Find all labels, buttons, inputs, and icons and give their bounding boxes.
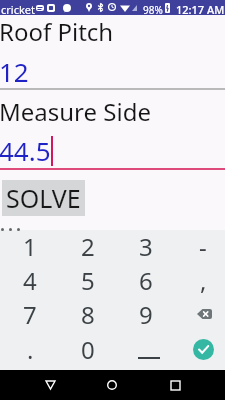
button[interactable]: 8 — [60, 297, 116, 331]
staticText: 9 — [139, 298, 153, 331]
button[interactable]: Home — [92, 370, 132, 400]
staticText: 1 — [23, 230, 37, 263]
staticText: 98% — [143, 3, 163, 17]
staticText: cricket — [1, 2, 35, 17]
button[interactable]: 7 — [2, 297, 58, 331]
staticText: 6 — [139, 264, 153, 297]
button[interactable]: 9 — [118, 297, 174, 331]
button[interactable]: SOLVE — [2, 180, 85, 216]
button[interactable]: , — [175, 263, 225, 297]
button[interactable]: - — [175, 229, 225, 263]
button[interactable]: 2 — [60, 229, 116, 263]
button[interactable]: 4 — [2, 263, 58, 297]
button[interactable]: 5 — [60, 263, 116, 297]
button[interactable]: 6 — [118, 263, 174, 297]
staticText: 4 — [23, 264, 37, 297]
button[interactable]: Recents — [155, 370, 195, 400]
staticText: . — [27, 333, 34, 366]
staticText: 3 — [139, 230, 153, 263]
staticText: 7 — [23, 298, 37, 331]
staticText: 0 — [81, 333, 95, 366]
button[interactable]: Backspace — [175, 297, 225, 331]
button[interactable]: Enter — [175, 332, 225, 366]
staticText: SOLVE — [6, 181, 81, 215]
staticText: 12:17 AM — [176, 2, 225, 17]
button[interactable]: . — [2, 332, 58, 366]
button[interactable]: 1 — [2, 229, 58, 263]
staticText: 44.5 — [0, 133, 51, 168]
button[interactable]: 0 — [60, 332, 116, 366]
staticText: 8 — [81, 298, 95, 331]
staticText: Roof Pitch — [0, 15, 114, 48]
other: Backspace — [196, 309, 211, 319]
button[interactable]: 3 — [118, 229, 174, 263]
button[interactable]: Back — [30, 370, 70, 400]
other: Enter — [193, 339, 214, 360]
staticText: Measure Side — [0, 95, 151, 128]
staticText: 5 — [81, 264, 95, 297]
staticText: 12 — [0, 54, 29, 89]
button[interactable] — [118, 332, 174, 366]
staticText: 2 — [81, 230, 95, 263]
staticText: , — [200, 264, 207, 297]
staticText: - — [199, 230, 207, 263]
